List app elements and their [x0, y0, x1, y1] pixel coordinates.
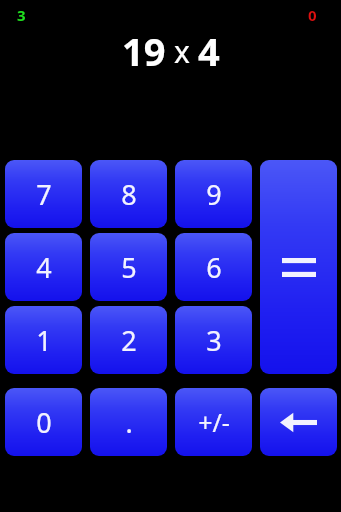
staticText: 2	[121, 322, 137, 359]
staticText: 3	[17, 5, 26, 25]
staticText: 7	[36, 176, 52, 213]
staticText: 6	[206, 249, 222, 286]
staticText: .	[125, 404, 133, 441]
button[interactable]: 4	[5, 233, 82, 301]
staticText: x	[174, 31, 190, 72]
button[interactable]: +/-	[175, 388, 252, 456]
staticText: 0	[308, 5, 317, 25]
button[interactable]: Backspace	[260, 388, 337, 456]
staticText: 4	[198, 25, 220, 77]
staticText: 8	[121, 176, 137, 213]
staticText: +/-	[198, 405, 230, 439]
staticText: 9	[206, 176, 222, 213]
button[interactable]: .	[90, 388, 167, 456]
button[interactable]: 8	[90, 160, 167, 228]
staticText: 3	[206, 322, 222, 359]
button[interactable]: 9	[175, 160, 252, 228]
button[interactable]: 0	[5, 388, 82, 456]
staticText: 5	[121, 249, 137, 286]
button[interactable]: 3	[17, 5, 26, 25]
button[interactable]: 5	[90, 233, 167, 301]
button[interactable]: 7	[5, 160, 82, 228]
staticText: 1	[36, 322, 52, 359]
button[interactable]: 2	[90, 306, 167, 374]
staticText: 4	[36, 249, 52, 286]
staticText: 19	[122, 25, 166, 77]
button[interactable]: 1	[5, 306, 82, 374]
button[interactable]: 6	[175, 233, 252, 301]
button[interactable]: Equals	[260, 160, 337, 374]
button[interactable]: 0	[308, 5, 317, 25]
staticText: 0	[36, 404, 52, 441]
button[interactable]: 3	[175, 306, 252, 374]
